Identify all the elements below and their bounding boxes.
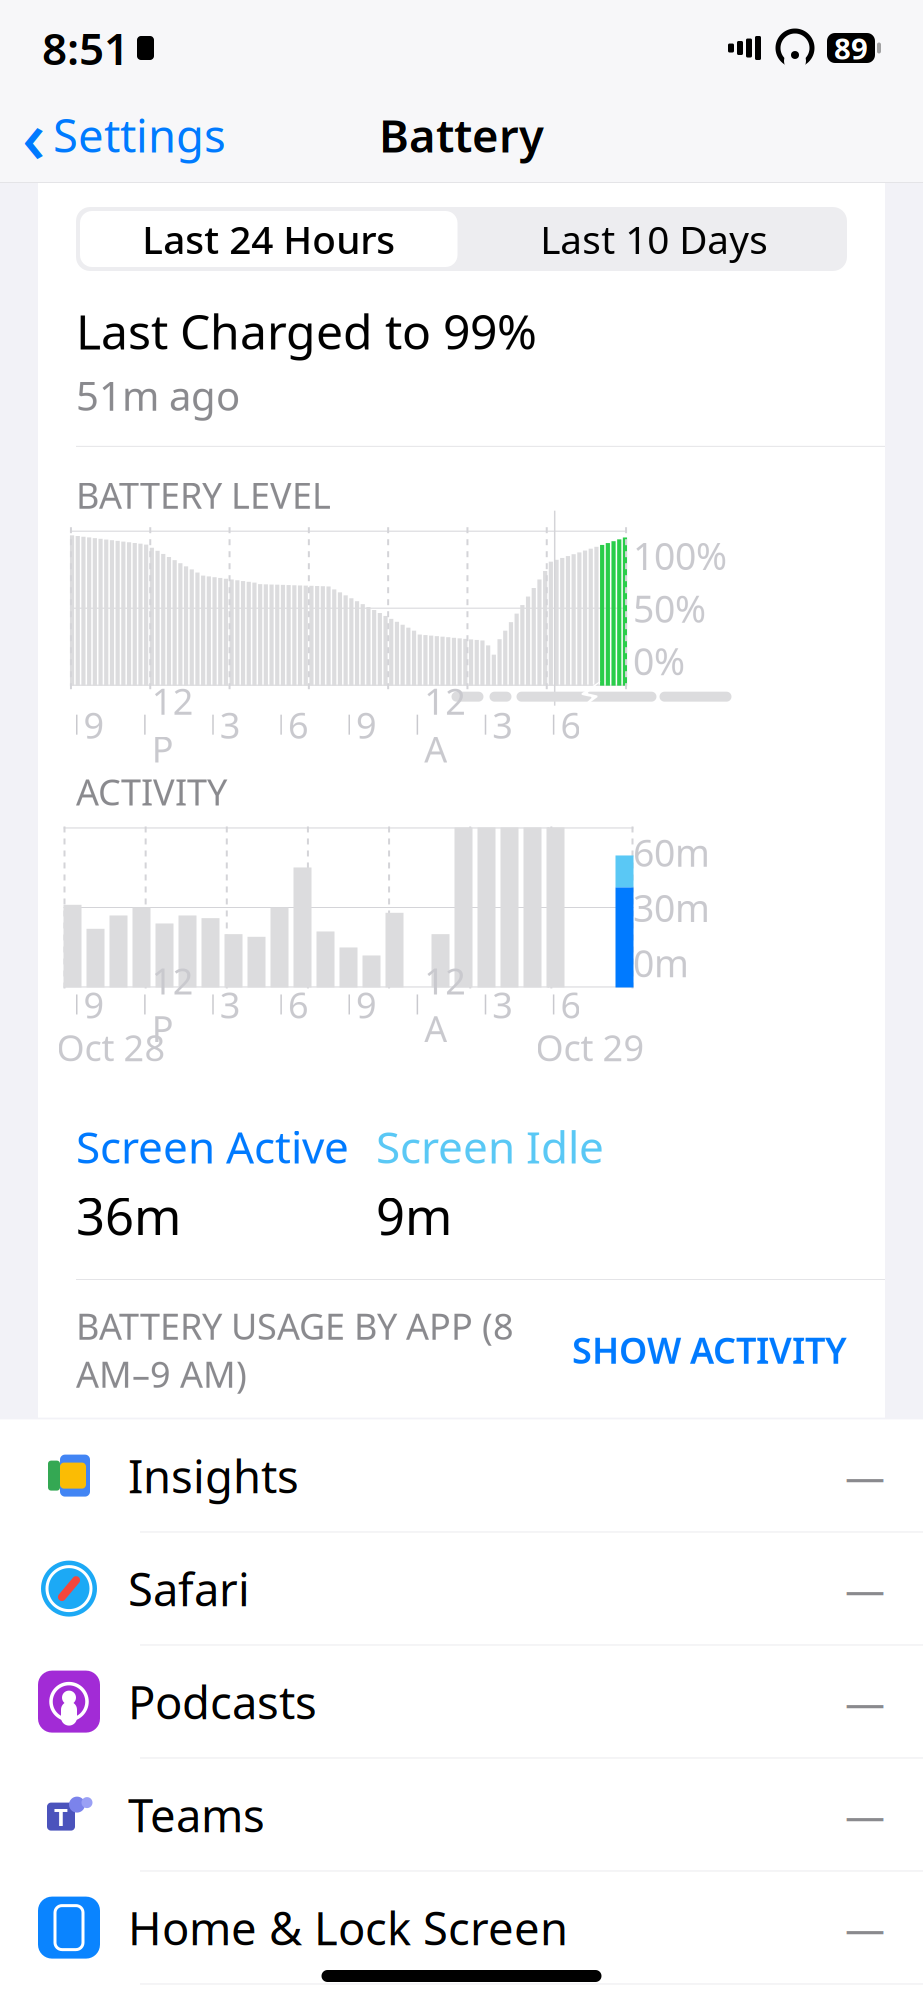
staticText: BATTERY LEVEL [76, 471, 331, 519]
staticText: Last Charged to 99% [76, 299, 537, 363]
staticText: 0m [633, 938, 689, 987]
staticText: Settings [53, 105, 226, 165]
staticText: 0% [633, 636, 685, 686]
button[interactable]: Last 10 Days [461, 207, 847, 271]
staticText: — [845, 1449, 885, 1502]
staticText: 50% [633, 583, 706, 633]
staticText: BATTERY USAGE BY APP (8 AM–9 AM) [76, 1302, 514, 1398]
staticText: 3 [220, 981, 241, 1028]
staticText: 9 [356, 701, 377, 749]
staticText: 9 [83, 701, 104, 749]
staticText: Insights [128, 1445, 299, 1506]
staticText: ‹ [22, 87, 45, 183]
staticText: 3 [220, 701, 241, 749]
staticText: 100% [633, 531, 727, 580]
staticText: — [845, 1675, 885, 1728]
staticText: Home & Lock Screen [128, 1897, 568, 1958]
staticText: 6 [288, 701, 309, 749]
staticText: 12 P [152, 957, 194, 1052]
staticText: ⚡︎ [575, 674, 603, 719]
staticText: ACTIVITY [76, 768, 227, 815]
staticText: Oct 29 [535, 1023, 644, 1071]
staticText: 6 [560, 701, 581, 749]
staticText: 9 [356, 981, 377, 1028]
button[interactable]: Insights [0, 1420, 923, 1533]
button[interactable]: Podcasts [0, 1646, 923, 1759]
staticText: 12 A [424, 677, 466, 772]
staticText: 3 [492, 701, 513, 749]
button[interactable]: Last 24 Hours [76, 207, 461, 271]
button[interactable]: ‹ [0, 81, 226, 189]
staticText: 12 P [152, 677, 194, 772]
staticText: 12 A [424, 957, 466, 1052]
staticText: 51m ago [76, 369, 240, 422]
staticText: Screen Active [76, 1117, 349, 1176]
button[interactable]: Safari [0, 1533, 923, 1646]
staticText: 36m [76, 1182, 181, 1249]
staticText: — [845, 1562, 885, 1615]
staticText: 9 [83, 981, 104, 1028]
staticText: 6 [288, 981, 309, 1028]
staticText: 6 [560, 981, 581, 1028]
staticText: T [54, 1801, 68, 1833]
staticText: 3 [492, 981, 513, 1028]
staticText: 89 [834, 28, 868, 67]
staticText: Last 10 Days [540, 213, 768, 265]
staticText: Podcasts [128, 1671, 317, 1732]
staticText: — [845, 1788, 885, 1841]
staticText: SHOW ACTIVITY [572, 1326, 847, 1374]
staticText: Safari [128, 1558, 250, 1619]
staticText: Oct 28 [56, 1023, 165, 1071]
staticText: Battery [379, 105, 544, 165]
staticText: Screen Idle [376, 1117, 604, 1176]
staticText: 8:51 [42, 19, 129, 77]
staticText: Teams [128, 1784, 265, 1845]
staticText: 9m [376, 1182, 452, 1249]
button[interactable]: Home & Lock Screen [0, 1872, 923, 1985]
staticText: Last 24 Hours [142, 213, 395, 265]
staticText: 30m [633, 883, 710, 932]
staticText: 60m [633, 827, 710, 877]
staticText: — [845, 1901, 885, 1954]
button[interactable]: SHOW ACTIVITY [572, 1326, 847, 1374]
button[interactable]: T [0, 1759, 923, 1872]
